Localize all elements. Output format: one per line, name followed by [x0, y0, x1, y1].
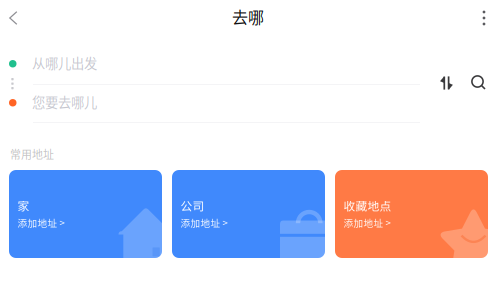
staticText: 公司 [180, 197, 204, 214]
button[interactable]: 从哪儿出发 [32, 53, 419, 81]
button[interactable]: Back [9, 9, 35, 27]
staticText: 从哪儿出发 [32, 53, 97, 72]
staticText: 家 [17, 197, 29, 214]
button[interactable]: 公司 [172, 170, 325, 258]
staticText: 添加地址 > [343, 215, 390, 229]
staticText: 常用地址 [10, 146, 54, 162]
button[interactable]: 您要去哪儿 [32, 92, 419, 120]
staticText: 去哪 [232, 5, 264, 28]
staticText: 添加地址 > [17, 215, 64, 229]
staticText: 添加地址 > [180, 215, 227, 229]
staticText: 您要去哪儿 [32, 92, 97, 111]
button[interactable]: More options [476, 7, 492, 29]
button[interactable]: 收藏地点 [335, 170, 488, 258]
button[interactable]: 家 [9, 170, 162, 258]
button[interactable]: Search [471, 75, 486, 90]
button[interactable]: Swap origin and destination [440, 76, 453, 90]
staticText: 收藏地点 [343, 197, 391, 214]
